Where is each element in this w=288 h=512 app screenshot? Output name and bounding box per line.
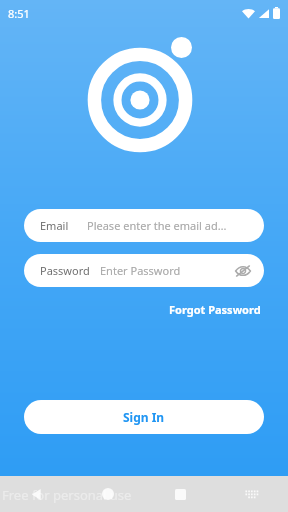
staticText: Forgot Password [169,302,261,317]
staticText: Password [40,263,90,278]
button[interactable]: Back [0,476,72,512]
staticText: 8:51 [8,6,30,21]
staticText: Email [40,218,69,233]
button[interactable]: Email [24,209,264,242]
button[interactable]: Forgot Password [165,298,265,321]
staticText: Enter Password [100,263,181,278]
button[interactable]: Password [24,254,264,287]
button[interactable]: Home [72,476,144,512]
button[interactable]: Show password [232,260,254,282]
staticText: Free for personal use [2,486,132,504]
staticText: Please enter the email ad… [87,218,227,233]
button[interactable]: Recent apps [144,476,216,512]
staticText: Sign In [123,409,165,425]
button[interactable]: Sign In [24,400,264,434]
